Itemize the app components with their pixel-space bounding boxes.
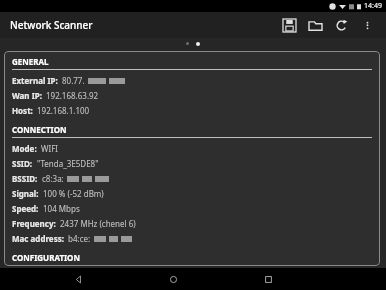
staticText: Mode: — [12, 143, 37, 154]
staticText: c8:3a: — [42, 173, 64, 184]
staticText: 104 Mbps — [43, 203, 80, 214]
staticText: BSSID: — [12, 173, 38, 184]
staticText: Frequency: — [12, 218, 56, 229]
button[interactable]: Home — [162, 268, 184, 290]
staticText: Host: — [12, 105, 33, 116]
staticText: 80.77. — [62, 75, 85, 86]
button[interactable]: More options — [354, 12, 380, 38]
staticText: Signal: — [12, 188, 39, 199]
staticText: 2437 MHz (chenel 6) — [60, 218, 136, 229]
staticText: 192.168.1.100 — [37, 105, 90, 116]
staticText: 100 % (-52 dBm) — [43, 188, 104, 199]
button[interactable]: Recent apps — [257, 268, 279, 290]
staticText: External IP: — [12, 75, 58, 86]
staticText: Wan IP: — [12, 90, 42, 101]
button[interactable]: Back — [67, 268, 89, 290]
button[interactable]: Open folder — [302, 12, 328, 38]
button[interactable]: Refresh — [328, 12, 354, 38]
staticText: GENERAL — [12, 56, 49, 67]
button[interactable]: Save — [276, 12, 302, 38]
staticText: CONFIGURATION — [12, 252, 80, 263]
staticText: SSID: — [12, 158, 33, 169]
staticText: Mac address: — [12, 233, 64, 244]
staticText: Speed: — [12, 203, 39, 214]
staticText: 192.168.63.92 — [46, 90, 99, 101]
staticText: WIFI — [41, 143, 59, 154]
staticText: Network Scanner — [10, 18, 93, 32]
staticText: CONNECTION — [12, 124, 67, 135]
staticText: b4:ce: — [68, 233, 91, 244]
staticText: "Tenda_3E5DE8" — [37, 158, 99, 169]
staticText: 14:49 — [364, 1, 382, 11]
